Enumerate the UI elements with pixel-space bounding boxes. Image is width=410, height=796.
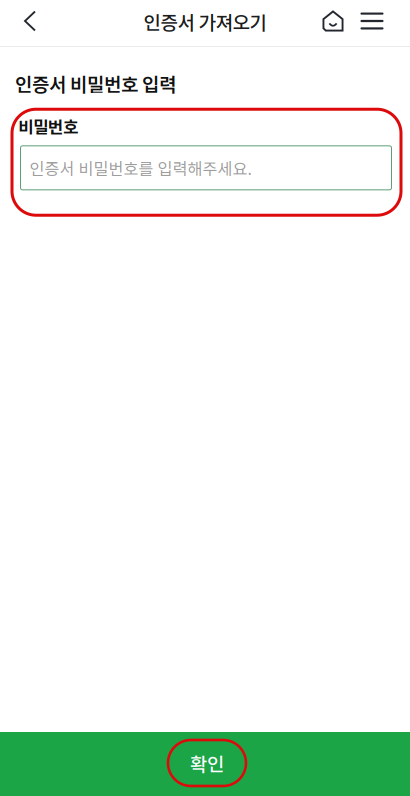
button[interactable]: 메뉴 (349, 0, 395, 42)
staticText: 확인 (190, 749, 224, 777)
staticText: 인증서 비밀번호 입력 (15, 70, 176, 97)
button[interactable]: 홈 (317, 0, 349, 42)
button[interactable]: 뒤로 (6, 0, 54, 42)
button[interactable]: 확인 (0, 732, 410, 796)
staticText: 비밀번호 (18, 114, 78, 138)
button[interactable]: 인증서 비밀번호를 입력해주세요. (20, 146, 391, 190)
staticText: 인증서 가져오기 (143, 8, 266, 35)
staticText: 인증서 비밀번호를 입력해주세요. (29, 156, 251, 180)
